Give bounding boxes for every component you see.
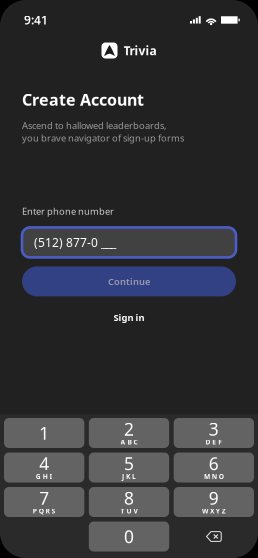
- staticText: E: [212, 438, 216, 446]
- staticText: R: [46, 507, 50, 515]
- staticText: 5: [124, 452, 134, 475]
- staticText: Sign in: [113, 311, 144, 324]
- staticText: 0: [124, 525, 134, 548]
- staticText: M: [204, 472, 210, 481]
- staticText: S: [51, 507, 55, 515]
- button[interactable]: Continue: [22, 266, 236, 296]
- button[interactable]: 8: [89, 487, 169, 517]
- staticText: Create Account: [22, 89, 144, 110]
- staticText: N: [212, 472, 217, 481]
- staticText: Trivia: [123, 42, 156, 58]
- staticText: (512) 877-0 ___: [34, 234, 116, 250]
- staticText: O: [219, 472, 224, 481]
- staticText: Continue: [108, 275, 150, 288]
- staticText: L: [132, 472, 136, 481]
- button[interactable]: Delete: [174, 521, 254, 551]
- button[interactable]: 3: [174, 418, 254, 448]
- staticText: 9:41: [24, 12, 48, 28]
- button[interactable]: 7: [4, 487, 84, 517]
- button[interactable]: 2: [89, 418, 169, 448]
- staticText: H: [43, 472, 48, 481]
- staticText: 3: [209, 417, 219, 440]
- staticText: Q: [39, 507, 44, 515]
- staticText: J: [122, 472, 124, 481]
- button[interactable]: 1: [4, 418, 84, 448]
- button[interactable]: 5: [89, 452, 169, 482]
- staticText: 8: [124, 486, 134, 509]
- staticText: B: [127, 438, 131, 446]
- staticText: G: [36, 472, 41, 481]
- staticText: Enter phone number: [22, 205, 114, 217]
- staticText: 4: [39, 452, 49, 475]
- staticText: V: [133, 507, 137, 515]
- staticText: Z: [222, 507, 226, 515]
- staticText: D: [205, 438, 210, 446]
- staticText: W: [202, 507, 208, 515]
- staticText: 7: [39, 486, 49, 509]
- staticText: U: [126, 507, 131, 515]
- staticText: I: [50, 472, 53, 481]
- staticText: K: [126, 472, 130, 481]
- staticText: X: [210, 507, 214, 515]
- staticText: A: [121, 438, 126, 446]
- button[interactable]: 0: [89, 521, 169, 551]
- staticText: 6: [209, 452, 219, 475]
- button[interactable]: 4: [4, 452, 84, 482]
- staticText: C: [133, 438, 137, 446]
- staticText: 2: [124, 417, 134, 440]
- staticText: Y: [216, 507, 220, 515]
- button[interactable]: 6: [174, 452, 254, 482]
- staticText: Ascend to hallowed leaderboards, you bra…: [22, 119, 184, 144]
- staticText: 9: [209, 486, 219, 509]
- button[interactable]: 9: [174, 487, 254, 517]
- button[interactable]: Sign in: [22, 307, 236, 327]
- staticText: T: [121, 507, 125, 515]
- staticText: F: [218, 438, 222, 446]
- staticText: 1: [39, 421, 49, 444]
- staticText: P: [33, 507, 37, 515]
